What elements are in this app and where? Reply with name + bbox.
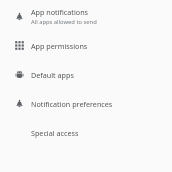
staticText: Special access [31,128,79,138]
button[interactable]: Default apps [0,60,172,89]
staticText: Default apps [31,70,74,80]
staticText: App notifications [31,7,89,17]
button[interactable]: App notifications [0,2,172,31]
button[interactable]: Notification preferences [0,89,172,118]
button[interactable]: App permissions [0,31,172,60]
staticText: Notification preferences [31,99,113,109]
staticText: All apps allowed to send [31,18,97,26]
button[interactable]: Special access [0,118,172,147]
staticText: App permissions [31,41,88,51]
